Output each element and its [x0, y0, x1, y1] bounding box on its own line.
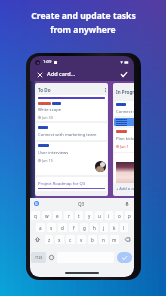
staticText: Plan kickof: [116, 136, 134, 142]
staticText: h: [93, 225, 96, 231]
button[interactable]: r: [64, 211, 73, 220]
button[interactable]: w: [42, 211, 51, 220]
staticText: v: [80, 237, 83, 243]
button[interactable]: o: [115, 211, 123, 220]
button[interactable]: x: [55, 235, 64, 244]
button[interactable]: t: [75, 211, 83, 220]
button[interactable]: n: [99, 235, 108, 244]
button[interactable]: Connect with marketing team: [36, 123, 107, 140]
button[interactable]: l: [120, 223, 128, 232]
button[interactable]: b: [88, 235, 97, 244]
button[interactable]: ?123: [31, 252, 46, 263]
staticText: z: [48, 237, 51, 243]
staticText: b: [91, 237, 94, 243]
staticText: g: [83, 225, 86, 231]
button[interactable]: s: [47, 223, 56, 232]
staticText: x: [58, 237, 61, 243]
staticText: q: [34, 213, 37, 219]
button[interactable]: User interviews: [36, 142, 107, 175]
staticText: Write scope: [38, 107, 62, 113]
button[interactable]: Connect wit: [114, 101, 134, 116]
button[interactable]: j: [100, 223, 108, 232]
staticText: Jun 1: [120, 144, 129, 149]
staticText: l: [123, 225, 125, 231]
button[interactable]: Emoji: [47, 252, 56, 263]
button[interactable]: z: [45, 235, 53, 244]
staticText: In Progress: [116, 89, 134, 95]
button[interactable]: u: [95, 211, 103, 220]
button[interactable]: Plan kickof: [114, 128, 134, 152]
staticText: Create and update tasks: [31, 10, 136, 22]
button[interactable]: [114, 118, 134, 126]
staticText: t: [78, 213, 80, 219]
button[interactable]: v: [77, 235, 86, 244]
staticText: Connect with marketing team: [38, 132, 97, 138]
staticText: s: [50, 225, 53, 231]
button[interactable]: g: [80, 223, 88, 232]
staticText: d: [61, 225, 64, 231]
button[interactable]: c: [66, 235, 75, 244]
button[interactable]: Project Roadmap for Q3: [36, 177, 107, 191]
button[interactable]: d: [58, 223, 67, 232]
button[interactable]: Close: [35, 70, 44, 79]
button[interactable]: q: [31, 211, 40, 220]
button[interactable]: Enter: [117, 252, 132, 263]
staticText: ?123: [35, 255, 43, 260]
staticText: p: [128, 213, 131, 219]
button[interactable]: [114, 153, 134, 183]
staticText: + Add a card: [116, 186, 134, 191]
staticText: Connect wit: [116, 109, 134, 115]
staticText: u: [98, 213, 101, 219]
staticText: G: [35, 201, 38, 206]
button[interactable]: Member avatar: [95, 161, 106, 172]
staticText: Jun 30: [42, 115, 53, 120]
button[interactable]: Write scope: [36, 95, 107, 121]
staticText: Project Roadmap for Q3: [38, 181, 86, 187]
staticText: y: [88, 213, 91, 219]
button[interactable]: i: [105, 211, 113, 220]
staticText: f: [73, 225, 75, 231]
staticText: e: [56, 213, 59, 219]
button[interactable]: Confirm: [119, 69, 129, 79]
staticText: from anywhere: [50, 24, 116, 36]
staticText: m: [112, 237, 117, 243]
button[interactable]: Backspace: [121, 235, 133, 244]
button[interactable]: h: [90, 223, 98, 232]
staticText: n: [102, 237, 105, 243]
staticText: User interviews: [38, 150, 69, 156]
button[interactable]: p: [125, 211, 133, 220]
button[interactable]: k: [110, 223, 118, 232]
staticText: i: [108, 213, 110, 219]
button[interactable]: Shift: [31, 235, 43, 244]
staticText: o: [118, 213, 121, 219]
staticText: r: [68, 213, 70, 219]
staticText: Q3: [78, 201, 85, 207]
staticText: a: [39, 225, 42, 231]
button[interactable]: m: [110, 235, 119, 244]
button[interactable]: f: [69, 223, 78, 232]
button[interactable]: e: [53, 211, 62, 220]
button[interactable]: a: [36, 223, 45, 232]
staticText: 1:09: [43, 59, 52, 65]
staticText: Jun 15: [42, 158, 53, 163]
staticText: c: [69, 237, 72, 243]
staticText: j: [103, 225, 105, 231]
staticText: k: [113, 225, 116, 231]
staticText: w: [45, 213, 49, 219]
button[interactable]: Voice input: [124, 201, 130, 207]
staticText: To Do: [38, 87, 51, 93]
button[interactable]: y: [85, 211, 93, 220]
staticText: Add card...: [47, 70, 76, 78]
